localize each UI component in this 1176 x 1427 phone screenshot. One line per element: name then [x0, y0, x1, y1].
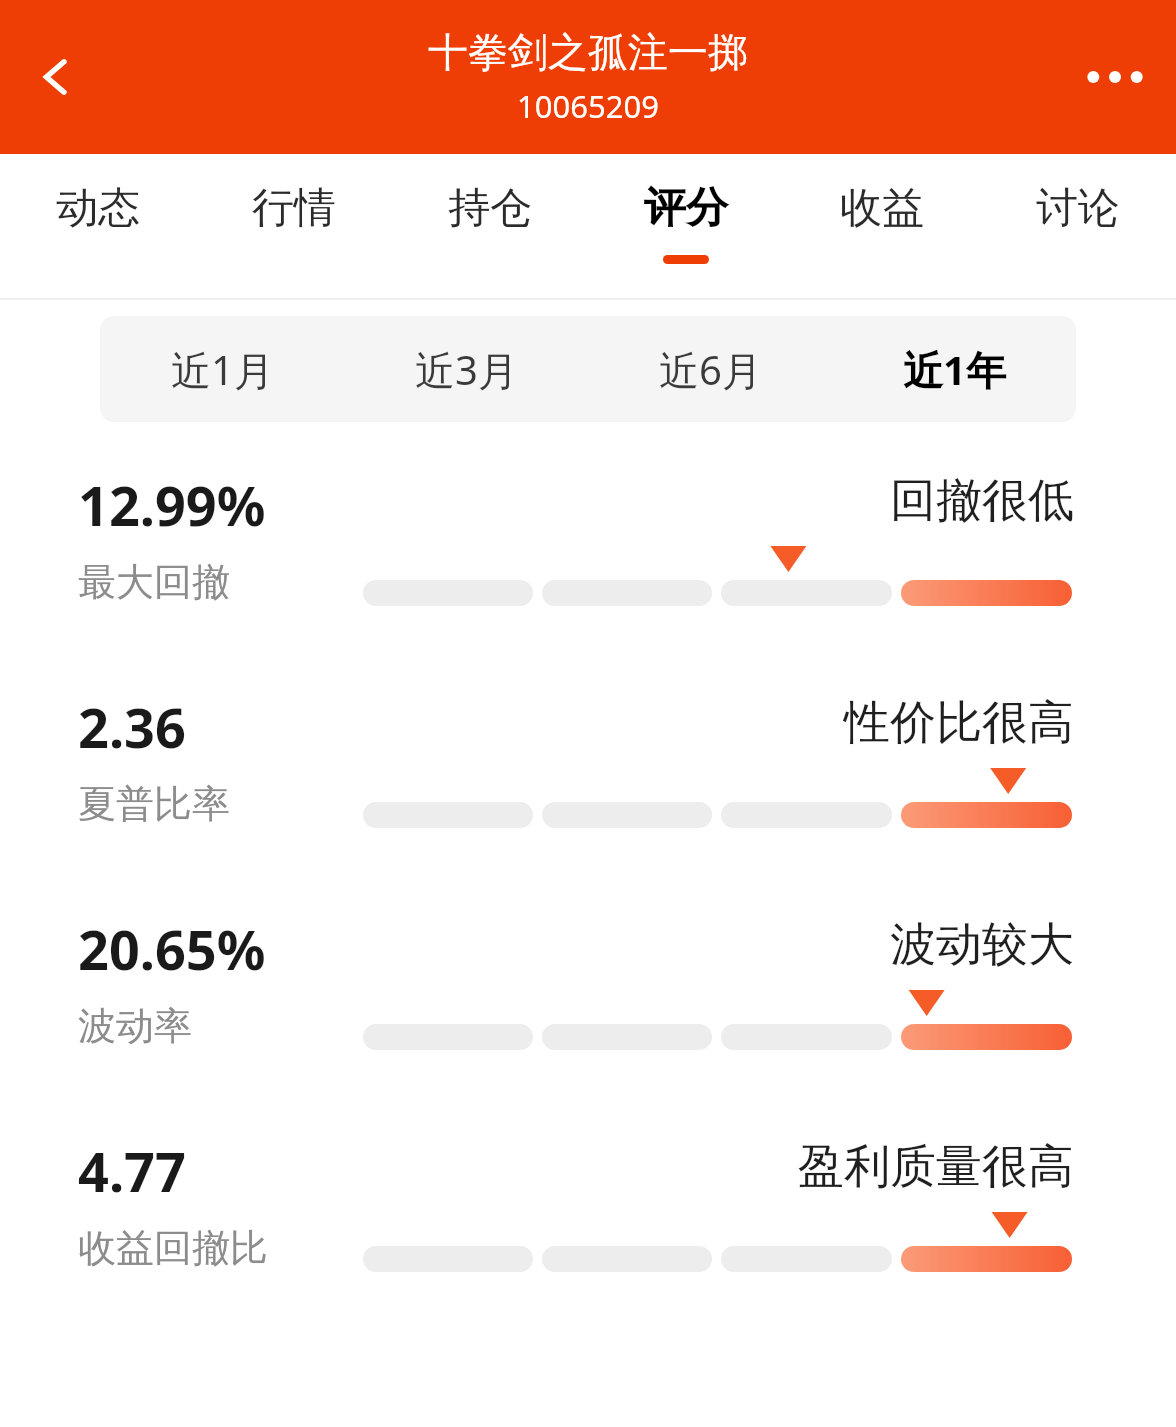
- staticText: 动态: [56, 182, 140, 235]
- staticText: 2.36: [78, 690, 186, 764]
- staticText: 4.77: [78, 1134, 186, 1208]
- button[interactable]: 12.99%: [0, 462, 1176, 648]
- staticText: 近1年: [903, 342, 1006, 397]
- staticText: 波动较大: [890, 916, 1074, 974]
- staticText: 近3月: [415, 342, 518, 397]
- staticText: 讨论: [1036, 182, 1120, 235]
- button[interactable]: 行情: [196, 154, 392, 300]
- button[interactable]: 收益: [784, 154, 980, 300]
- staticText: 盈利质量很高: [798, 1138, 1074, 1196]
- staticText: 夏普比率: [78, 780, 230, 828]
- staticText: 评分: [644, 182, 728, 235]
- staticText: 最大回撤: [78, 558, 230, 606]
- button[interactable]: 近3月: [344, 316, 588, 422]
- staticText: 收益: [840, 182, 924, 235]
- staticText: 10065209: [517, 85, 659, 127]
- staticText: 波动率: [78, 1002, 192, 1050]
- staticText: 十拳剑之孤注一掷: [428, 27, 748, 77]
- button[interactable]: Back: [20, 41, 92, 113]
- button[interactable]: 4.77: [0, 1128, 1176, 1314]
- button[interactable]: 20.65%: [0, 906, 1176, 1092]
- button[interactable]: 近1年: [832, 316, 1076, 422]
- staticText: 回撤很低: [890, 472, 1074, 530]
- staticText: 性价比很高: [844, 694, 1074, 752]
- button[interactable]: 近6月: [588, 316, 832, 422]
- staticText: 近6月: [659, 342, 762, 397]
- staticText: 20.65%: [78, 912, 266, 986]
- staticText: 行情: [252, 182, 336, 235]
- button[interactable]: 评分: [588, 154, 784, 300]
- staticText: 持仓: [448, 182, 532, 235]
- button[interactable]: More options: [1072, 34, 1158, 120]
- button[interactable]: 持仓: [392, 154, 588, 300]
- button[interactable]: 近1月: [100, 316, 344, 422]
- button[interactable]: 2.36: [0, 684, 1176, 870]
- staticText: 12.99%: [78, 468, 266, 542]
- button[interactable]: 动态: [0, 154, 196, 300]
- button[interactable]: 讨论: [980, 154, 1176, 300]
- staticText: 收益回撤比: [78, 1224, 268, 1272]
- staticText: 近1月: [171, 342, 274, 397]
